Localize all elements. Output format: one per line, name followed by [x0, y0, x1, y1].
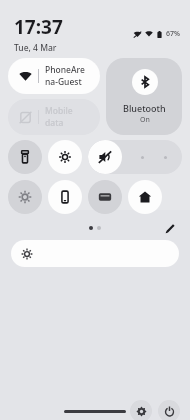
- staticText: 17:37: [14, 14, 63, 40]
- button[interactable]: Mute: [88, 140, 182, 174]
- button[interactable]: PhoneAre: [8, 58, 100, 94]
- button[interactable]: Auto rotate: [48, 180, 82, 214]
- button[interactable]: Home controls: [128, 180, 162, 214]
- button[interactable]: Flashlight: [8, 140, 42, 174]
- staticText: na-Guest: [45, 76, 82, 88]
- button[interactable]: Bluetooth: [106, 58, 182, 135]
- staticText: On: [140, 115, 150, 125]
- button[interactable]: Mobile: [8, 99, 100, 135]
- staticText: data: [45, 117, 64, 129]
- staticText: Tue, 4 Mar: [14, 42, 57, 52]
- button[interactable]: Brightness: [8, 180, 42, 214]
- button[interactable]: Power: [158, 400, 180, 420]
- button[interactable]: Settings: [130, 400, 152, 420]
- staticText: Mobile: [45, 105, 73, 117]
- button[interactable]: Auto brightness: [48, 140, 82, 174]
- button[interactable]: Edit tiles: [162, 221, 178, 235]
- staticText: PhoneAre: [45, 64, 85, 76]
- button[interactable]: Brightness: [11, 240, 179, 267]
- staticText: 67%: [166, 29, 180, 39]
- button[interactable]: Screen record: [88, 180, 122, 214]
- staticText: Bluetooth: [123, 102, 166, 114]
